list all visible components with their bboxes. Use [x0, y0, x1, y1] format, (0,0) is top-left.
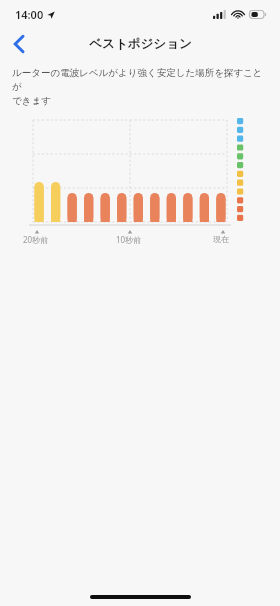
staticText: 20秒前: [23, 234, 49, 245]
staticText: ベストポジション: [89, 36, 192, 52]
staticText: 10秒前: [116, 234, 142, 245]
button[interactable]: Back: [2, 28, 36, 60]
staticText: ルーターの電波レベルがより強く安定した場所を探すことが できます: [12, 67, 270, 107]
staticText: 現在: [213, 234, 229, 244]
staticText: 14:00: [15, 7, 44, 22]
